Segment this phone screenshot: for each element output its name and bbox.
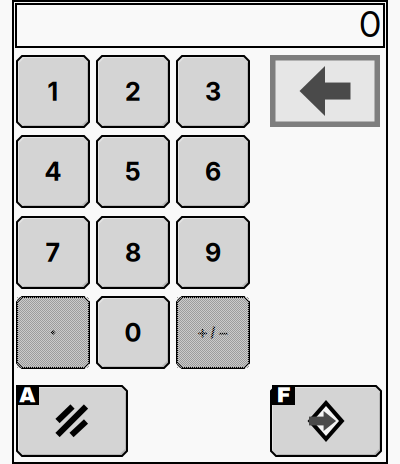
staticText: 8 — [125, 237, 141, 268]
button[interactable]: 6 — [177, 136, 249, 207]
staticText: 9 — [205, 237, 221, 268]
staticText: 0 — [359, 2, 381, 46]
button[interactable]: 4 — [17, 136, 89, 207]
staticText: 5 — [125, 156, 141, 187]
button[interactable]: 1 — [17, 56, 89, 127]
button[interactable]: 5 — [97, 136, 169, 207]
button[interactable]: 8 — [97, 217, 169, 288]
staticText: A — [19, 383, 36, 407]
staticText: – — [218, 323, 228, 342]
button[interactable]: Backspace — [270, 55, 380, 127]
button[interactable]: 2 — [97, 56, 169, 127]
button[interactable]: 7 — [17, 217, 89, 288]
button[interactable]: Decimal point — [17, 297, 89, 368]
staticText: F — [276, 383, 290, 407]
staticText: 7 — [45, 237, 60, 268]
button[interactable]: 0 — [97, 297, 169, 368]
button[interactable]: 3 — [177, 56, 249, 127]
staticText: 4 — [44, 156, 61, 187]
button[interactable]: 9 — [177, 217, 249, 288]
staticText: 0 — [124, 317, 141, 348]
staticText: 6 — [205, 156, 221, 187]
button[interactable]: Function A — [17, 386, 127, 456]
staticText: 3 — [205, 76, 221, 107]
staticText: 2 — [125, 76, 141, 107]
button[interactable]: Change sign — [177, 297, 249, 368]
staticText: + — [197, 323, 207, 342]
staticText: / — [210, 323, 215, 342]
button[interactable]: Function F — [271, 386, 381, 456]
staticText: 1 — [47, 76, 58, 107]
